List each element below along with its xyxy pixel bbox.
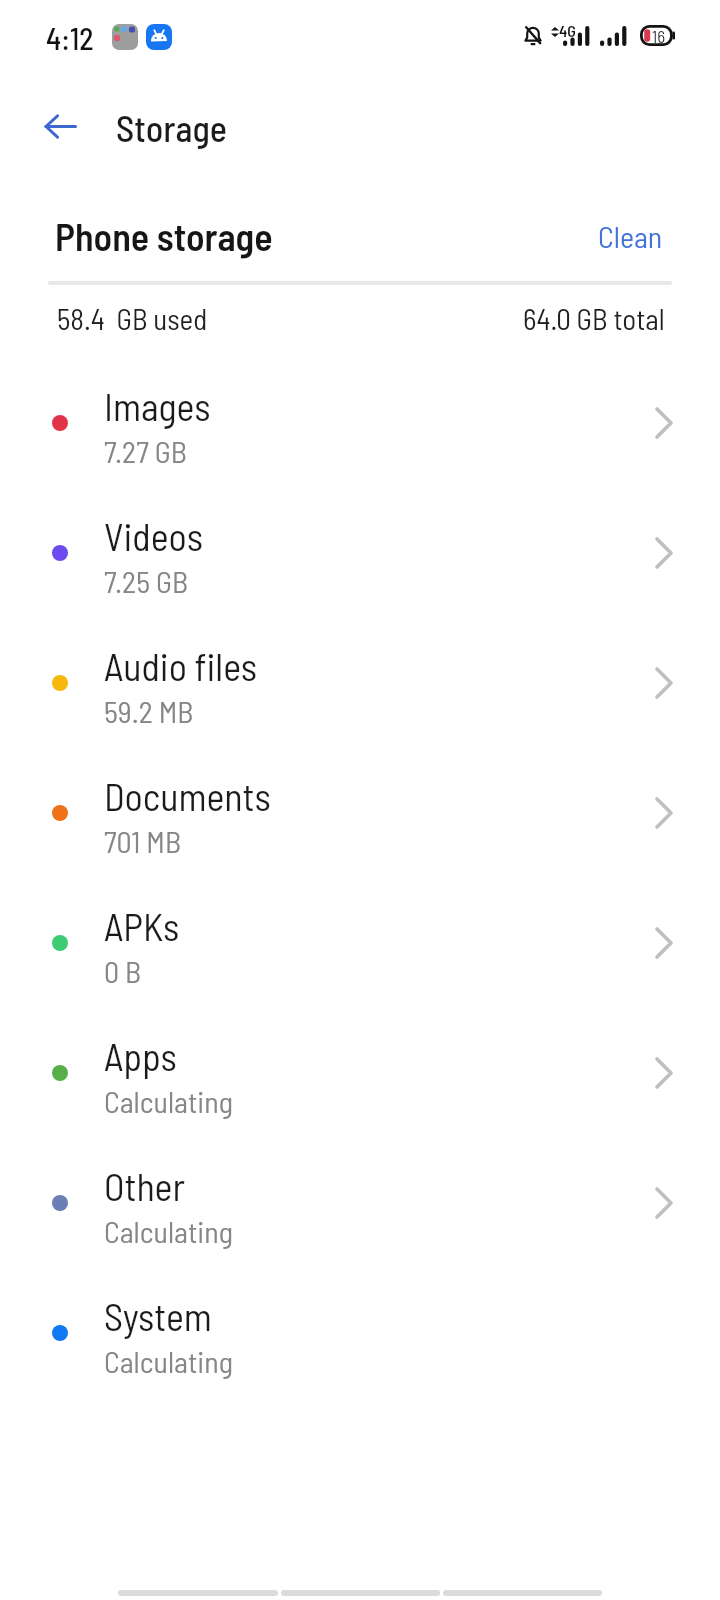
staticText: Other xyxy=(104,1163,185,1209)
staticText: 58.4 GB used xyxy=(57,301,208,336)
staticText: 701 MB xyxy=(104,823,182,859)
staticText: 0 B xyxy=(104,953,142,989)
button[interactable]: APKs xyxy=(0,882,720,1012)
button[interactable] xyxy=(30,96,90,156)
staticText: Clean xyxy=(598,218,663,254)
staticText: System xyxy=(104,1293,212,1339)
staticText: Videos xyxy=(104,513,204,559)
staticText: APKs xyxy=(104,903,180,949)
button[interactable]: System xyxy=(0,1272,720,1402)
staticText: 4G xyxy=(559,21,576,40)
staticText: 16 xyxy=(652,26,666,46)
staticText: Calculating xyxy=(104,1213,233,1249)
staticText: 7.27 GB xyxy=(104,433,187,469)
button[interactable]: Documents xyxy=(0,752,720,882)
button[interactable]: Images xyxy=(0,362,720,492)
staticText: Calculating xyxy=(104,1343,233,1379)
staticText: Audio files xyxy=(104,643,258,689)
staticText: Apps xyxy=(104,1033,177,1079)
staticText: 59.2 MB xyxy=(104,693,194,729)
staticText: Images xyxy=(104,383,211,429)
button[interactable]: Clean xyxy=(590,212,671,260)
staticText: 7.25 GB xyxy=(104,563,189,599)
button[interactable]: Videos xyxy=(0,492,720,622)
staticText: Storage xyxy=(116,106,227,149)
staticText: Calculating xyxy=(104,1083,233,1119)
button[interactable]: Apps xyxy=(0,1012,720,1142)
button[interactable]: Audio files xyxy=(0,622,720,752)
button[interactable]: Other xyxy=(0,1142,720,1272)
staticText: 4:12 xyxy=(46,20,94,56)
staticText: Phone storage xyxy=(55,213,273,259)
staticText: 64.0 GB total xyxy=(523,301,665,336)
staticText: Documents xyxy=(104,773,271,819)
